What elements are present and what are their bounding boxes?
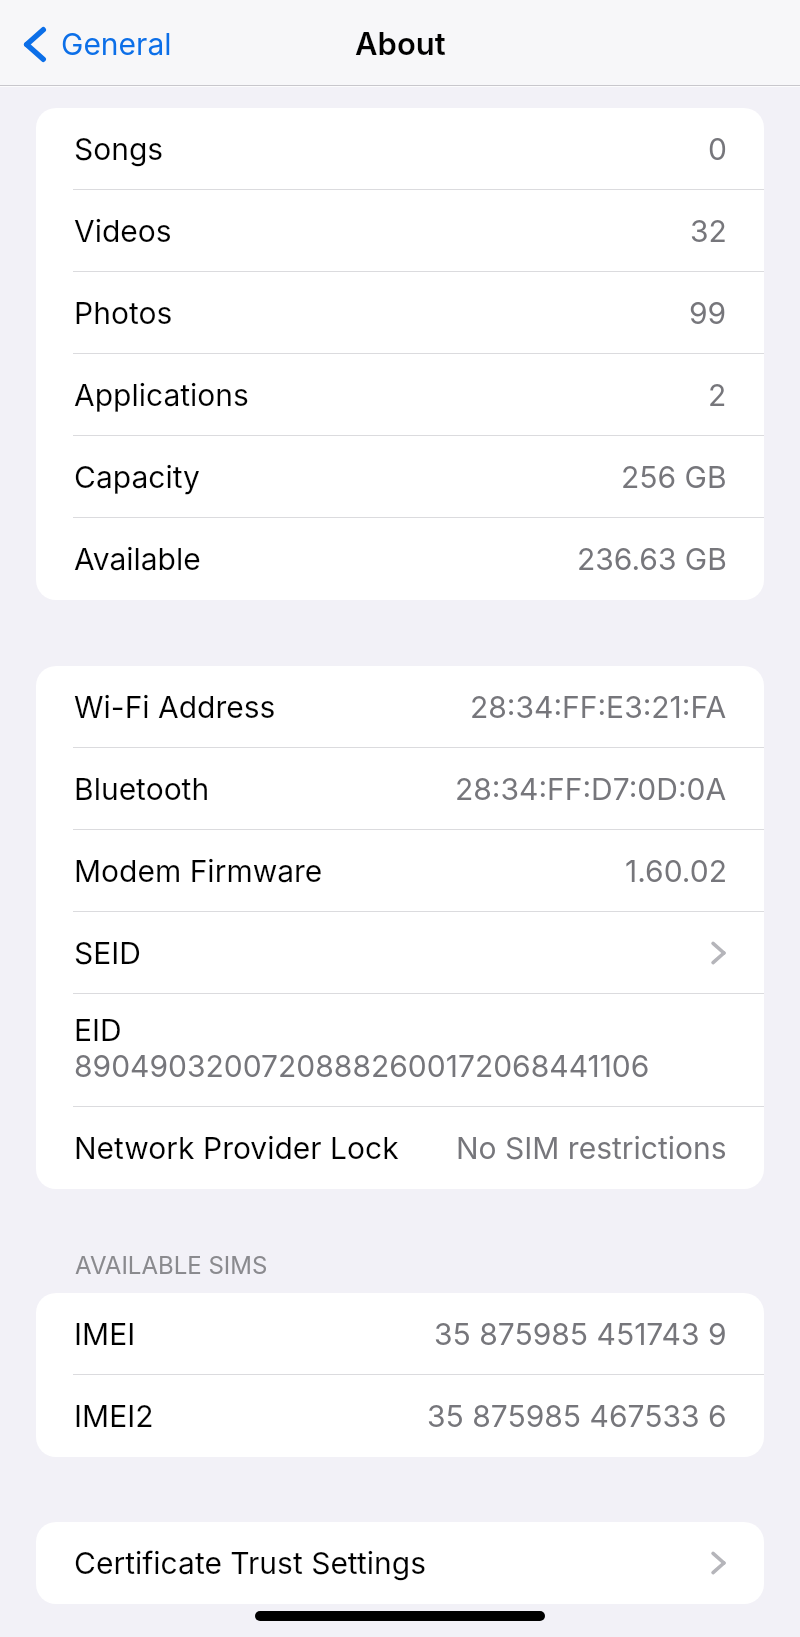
staticText: Modem Firmware	[74, 853, 323, 889]
staticText: 32	[690, 213, 727, 249]
staticText: Wi-Fi Address	[74, 689, 276, 725]
button[interactable]: Certificate Trust Settings	[36, 1522, 764, 1604]
button[interactable]: Available	[36, 518, 764, 600]
staticText: 89049032007208882600172068441106	[74, 1048, 650, 1084]
staticText: 99	[689, 295, 727, 331]
staticText: 35 875985 451743 9	[434, 1316, 727, 1352]
staticText: 236.63 GB	[577, 541, 727, 577]
staticText: EID	[74, 1012, 122, 1048]
staticText: No SIM restrictions	[456, 1130, 727, 1166]
staticText: 28:34:FF:D7:0D:0A	[455, 771, 727, 807]
staticText: AVAILABLE SIMS	[75, 1251, 268, 1280]
button[interactable]: Songs	[36, 108, 764, 190]
button[interactable]: EID	[36, 994, 764, 1107]
staticText: 35 875985 467533 6	[427, 1398, 727, 1434]
staticText: 256 GB	[621, 459, 727, 495]
staticText: Certificate Trust Settings	[74, 1545, 426, 1581]
staticText: Applications	[74, 377, 249, 413]
button[interactable]: Wi-Fi Address	[36, 666, 764, 748]
staticText: Bluetooth	[74, 771, 210, 807]
staticText: 1.60.02	[625, 853, 727, 889]
button[interactable]: Bluetooth	[36, 748, 764, 830]
staticText: Capacity	[74, 459, 200, 495]
staticText: Network Provider Lock	[74, 1130, 399, 1166]
button[interactable]: IMEI	[36, 1293, 764, 1375]
staticText: 2	[708, 377, 727, 413]
staticText: Songs	[74, 131, 164, 167]
button[interactable]: Back to General	[0, 12, 182, 76]
button[interactable]: Photos	[36, 272, 764, 354]
other: Open	[710, 1548, 727, 1578]
button[interactable]: Capacity	[36, 436, 764, 518]
staticText: IMEI	[74, 1316, 136, 1352]
button[interactable]: Modem Firmware	[36, 830, 764, 912]
button[interactable]: Network Provider Lock	[36, 1107, 764, 1189]
staticText: IMEI2	[74, 1398, 154, 1434]
staticText: General	[61, 26, 172, 62]
staticText: 0	[708, 131, 727, 167]
button[interactable]: Videos	[36, 190, 764, 272]
staticText: About	[355, 25, 446, 63]
staticText: Available	[74, 541, 201, 577]
button[interactable]: SEID	[36, 912, 764, 994]
staticText: SEID	[74, 935, 141, 971]
staticText: 28:34:FF:E3:21:FA	[470, 689, 727, 725]
button[interactable]: IMEI2	[36, 1375, 764, 1457]
staticText: Videos	[74, 213, 172, 249]
staticText: Photos	[74, 295, 173, 331]
button[interactable]: Applications	[36, 354, 764, 436]
other: Open	[710, 938, 727, 968]
